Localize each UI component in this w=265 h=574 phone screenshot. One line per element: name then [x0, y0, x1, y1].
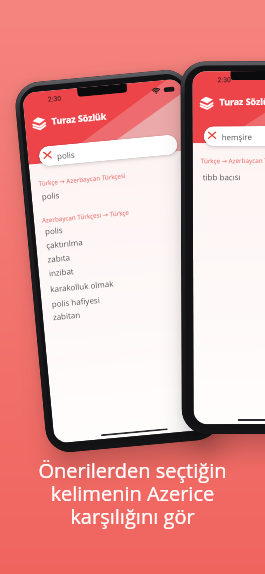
staticText: polis	[56, 148, 75, 161]
staticText: Turaz Sözlük	[51, 110, 107, 127]
staticText: zabıta	[47, 251, 71, 264]
staticText: polis hafiyesi	[51, 294, 101, 309]
staticText: 2:30	[47, 94, 62, 104]
staticText: 2:30	[217, 76, 231, 84]
staticText: Azerbaycan Türkçesi → Türkçe	[41, 208, 130, 225]
staticText: polis	[41, 189, 60, 202]
staticText: tibb bacısı	[203, 171, 241, 182]
staticText: hemşire	[222, 131, 253, 142]
staticText: çaktırılma	[46, 236, 84, 251]
staticText: karakolluk olmak	[50, 277, 114, 294]
staticText: Turaz Sözlük	[219, 96, 265, 108]
button[interactable]: Clear search	[38, 134, 178, 167]
other: Clear search	[209, 132, 216, 138]
other: Clear search	[44, 152, 51, 158]
staticText: Türkçe → Azerbaycan Türkçesi	[38, 171, 127, 188]
staticText: inzibat	[48, 265, 74, 278]
staticText: polis	[44, 224, 63, 237]
button[interactable]: Clear search	[204, 126, 265, 146]
staticText: zabitan	[52, 309, 81, 322]
staticText: Türkçe → Azerbaycan Türkçesi	[201, 156, 265, 165]
staticText: Önerilerden seçtiğin kelimenin Azerice k…	[0, 457, 265, 574]
